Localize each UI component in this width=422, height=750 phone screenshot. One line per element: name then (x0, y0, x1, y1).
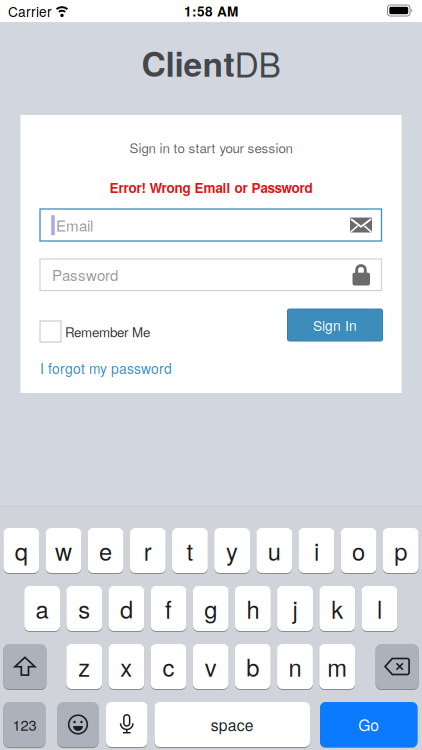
staticText: Error! Wrong Email or Password (109, 178, 312, 197)
button[interactable]: Email (40, 209, 381, 241)
staticText: a (36, 591, 49, 625)
staticText: I forgot my password (40, 358, 172, 378)
button[interactable]: r (130, 528, 166, 573)
staticText: j (293, 591, 298, 625)
staticText: d (120, 591, 133, 625)
button[interactable]: s (66, 586, 102, 631)
button[interactable]: k (319, 586, 355, 631)
staticText: r (144, 533, 152, 567)
staticText: Go (358, 713, 379, 736)
button[interactable]: a (24, 586, 60, 631)
button[interactable]: l (361, 586, 397, 631)
button[interactable]: h (235, 586, 271, 631)
staticText: z (78, 649, 90, 683)
staticText: c (162, 649, 174, 683)
staticText: s (78, 591, 90, 625)
button[interactable]: i (298, 528, 334, 573)
staticText: Sign In (313, 315, 357, 335)
button[interactable]: v (193, 644, 229, 689)
staticText: y (226, 533, 238, 567)
staticText: h (246, 591, 259, 625)
button[interactable]: p (383, 528, 419, 573)
button[interactable]: z (66, 644, 102, 689)
staticText: o (352, 533, 365, 567)
staticText: v (205, 649, 217, 683)
staticText: space (211, 713, 254, 736)
button[interactable]: w (46, 528, 81, 573)
button[interactable]: Dictate (106, 702, 147, 747)
staticText: e (99, 533, 112, 567)
staticText: m (327, 649, 347, 683)
button[interactable]: Emoji (57, 702, 98, 747)
button[interactable]: b (235, 644, 271, 689)
button[interactable]: Sign In (287, 309, 382, 341)
button[interactable]: space (154, 702, 310, 747)
button[interactable]: 123 (3, 702, 45, 747)
staticText: t (186, 533, 193, 567)
button[interactable]: Remember Me (40, 321, 150, 342)
button[interactable]: f (151, 586, 186, 631)
staticText: Sign in to start your session (129, 138, 292, 157)
staticText: l (377, 591, 382, 625)
button[interactable]: Shift (3, 644, 46, 689)
button[interactable]: d (108, 586, 144, 631)
staticText: x (120, 649, 132, 683)
staticText: Password (52, 264, 118, 285)
button[interactable]: I forgot my password (40, 358, 172, 378)
staticText: g (204, 591, 217, 625)
button[interactable]: j (277, 586, 313, 631)
staticText: Email (56, 214, 93, 236)
button[interactable]: y (214, 528, 250, 573)
button[interactable]: c (151, 644, 186, 689)
button[interactable]: u (256, 528, 292, 573)
button[interactable]: x (108, 644, 144, 689)
button[interactable]: g (193, 586, 229, 631)
staticText: f (165, 591, 172, 625)
staticText: Carrier (8, 1, 52, 21)
staticText: b (246, 649, 259, 683)
button[interactable]: t (172, 528, 208, 573)
button[interactable]: Delete (376, 644, 419, 689)
staticText: Client (141, 39, 234, 87)
staticText: u (268, 533, 281, 567)
staticText: w (55, 533, 72, 567)
staticText: q (15, 533, 28, 567)
button[interactable]: n (277, 644, 313, 689)
button[interactable]: o (341, 528, 376, 573)
button[interactable]: Password (40, 259, 381, 290)
staticText: 123 (12, 714, 36, 735)
staticText: 1:58 AM (184, 1, 238, 21)
button[interactable]: m (319, 644, 355, 689)
button[interactable]: q (3, 528, 39, 573)
staticText: p (394, 533, 407, 567)
staticText: n (288, 649, 301, 683)
staticText: i (314, 533, 319, 567)
staticText: Remember Me (65, 322, 150, 341)
staticText: k (331, 591, 343, 625)
button[interactable]: e (88, 528, 123, 573)
button[interactable]: Go (320, 702, 417, 747)
staticText: DB (234, 39, 280, 87)
